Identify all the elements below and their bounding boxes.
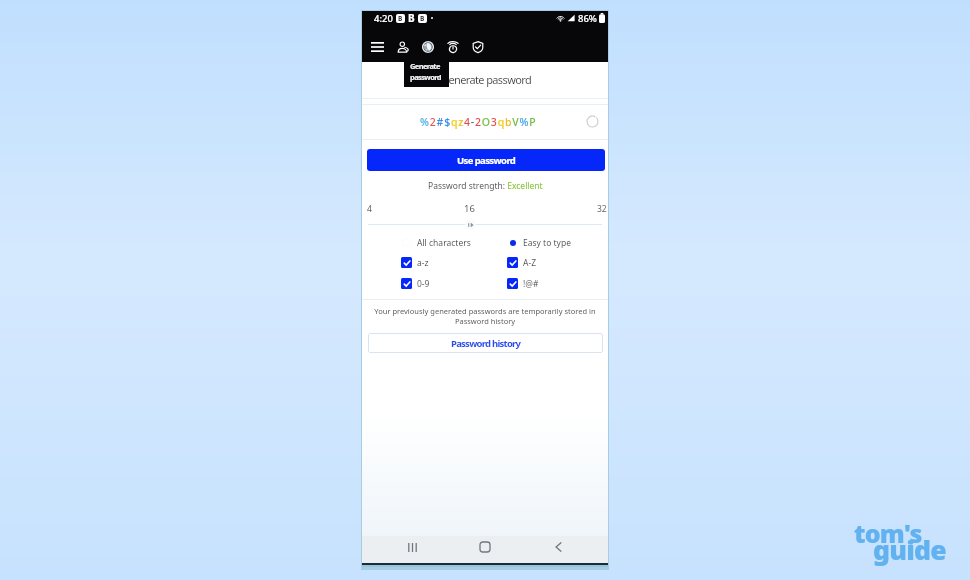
- staticText: All characters: [417, 237, 471, 249]
- button[interactable]: Regenerate password: [586, 115, 599, 128]
- staticText: 4: [367, 203, 372, 215]
- staticText: %2#$qz4-2O3qbV%P: [420, 115, 537, 129]
- button[interactable]: Password length: [465, 219, 476, 230]
- button[interactable]: Recents: [401, 536, 423, 558]
- button[interactable]: Browser: [415, 32, 440, 61]
- staticText: B: [408, 11, 415, 25]
- staticText: B: [420, 14, 425, 23]
- button[interactable]: Back: [547, 536, 569, 558]
- staticText: 16: [464, 202, 475, 215]
- button[interactable]: Password history: [368, 333, 603, 353]
- staticText: 32: [597, 203, 607, 215]
- button[interactable]: Menu: [365, 32, 390, 61]
- button[interactable]: A-Z: [507, 255, 537, 270]
- staticText: 0-9: [417, 278, 430, 290]
- staticText: Generate: [410, 61, 440, 71]
- button[interactable]: Use password: [367, 149, 605, 171]
- staticText: Easy to type: [523, 237, 571, 249]
- staticText: Use password: [457, 154, 516, 167]
- staticText: Password strength: Excellent: [428, 180, 543, 192]
- staticText: guide: [873, 532, 946, 568]
- button[interactable]: !@#: [507, 276, 539, 291]
- button[interactable]: 0-9: [401, 276, 430, 291]
- staticText: Password history: [451, 337, 521, 350]
- staticText: Generate password: [441, 72, 532, 87]
- staticText: a-z: [417, 257, 429, 269]
- staticText: Your previously generated passwords are …: [367, 306, 603, 326]
- staticText: !@#: [523, 278, 539, 290]
- button[interactable]: a-z: [401, 255, 429, 270]
- button[interactable]: Security: [465, 32, 490, 61]
- staticText: 86%: [578, 12, 597, 25]
- staticText: B: [398, 14, 403, 23]
- staticText: 4:20: [374, 12, 393, 25]
- button[interactable]: All characters: [401, 235, 471, 250]
- button[interactable]: Home: [474, 536, 496, 558]
- staticText: tom's: [854, 516, 922, 550]
- staticText: A-Z: [523, 257, 537, 269]
- button[interactable]: Easy to type: [507, 235, 571, 250]
- staticText: password: [410, 72, 442, 82]
- button[interactable]: VPN: [440, 32, 465, 61]
- button[interactable]: Account: [390, 32, 415, 61]
